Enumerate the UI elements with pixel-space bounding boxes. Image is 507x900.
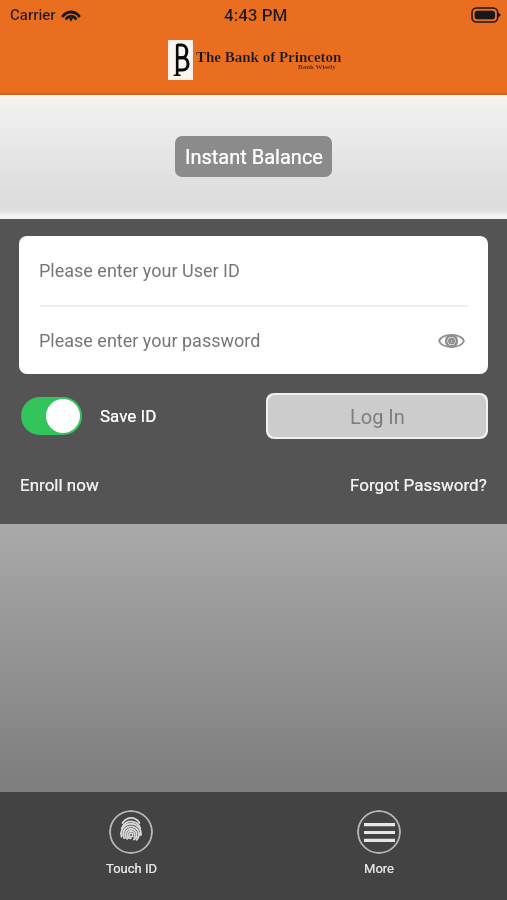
staticText: Carrier: [10, 6, 56, 24]
staticText: Please enter your User ID: [39, 260, 240, 281]
button[interactable]: Enroll now: [20, 475, 99, 495]
button[interactable]: Touch ID login: [71, 792, 191, 886]
staticText: The Bank of Princeton: [196, 49, 342, 66]
button[interactable]: Log In: [268, 395, 486, 437]
staticText: Forgot Password?: [350, 475, 487, 495]
staticText: More: [364, 861, 394, 876]
staticText: Touch ID: [106, 861, 157, 876]
staticText: 4:43 PM: [224, 5, 288, 25]
staticText: Log In: [350, 405, 405, 428]
staticText: Please enter your password: [39, 330, 261, 351]
staticText: Save ID: [100, 406, 157, 426]
button[interactable]: Instant Balance: [175, 136, 332, 177]
button[interactable]: More options: [319, 792, 439, 886]
button[interactable]: Save ID: [21, 397, 157, 435]
staticText: Bank Wisely: [298, 63, 336, 71]
button[interactable]: Please enter your password: [19, 307, 488, 374]
staticText: Instant Balance: [185, 145, 323, 168]
button[interactable]: Show password: [434, 324, 468, 358]
staticText: Enroll now: [20, 475, 99, 495]
button[interactable]: Forgot Password?: [350, 475, 487, 495]
button[interactable]: Please enter your User ID: [19, 236, 488, 305]
